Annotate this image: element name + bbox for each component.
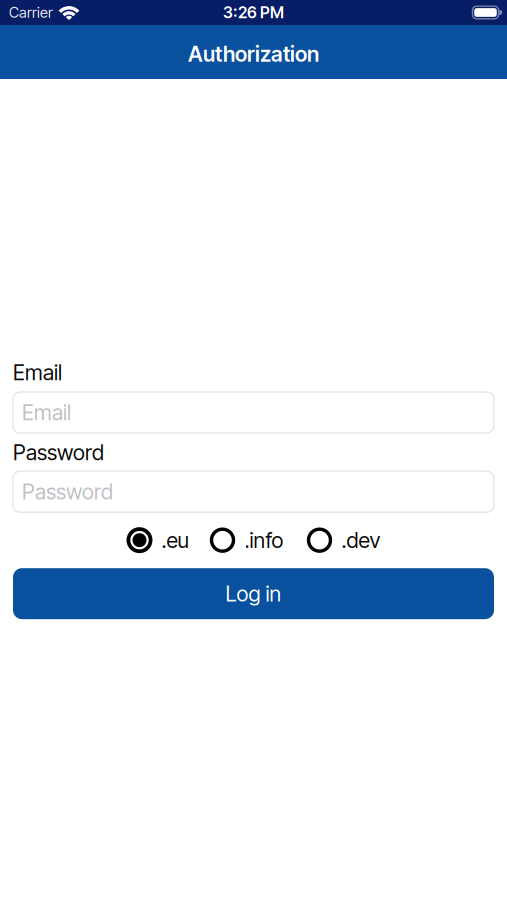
staticText: Authorization — [188, 41, 319, 67]
staticText: 3:26 PM — [223, 3, 284, 22]
button[interactable]: .info — [209, 527, 283, 553]
staticText: Carrier — [9, 4, 53, 21]
staticText: Email — [22, 400, 71, 425]
staticText: .info — [244, 528, 283, 553]
button[interactable]: .dev — [306, 527, 380, 553]
staticText: Password — [13, 440, 104, 465]
staticText: .dev — [341, 528, 380, 553]
button[interactable]: Password — [13, 471, 494, 512]
staticText: Email — [13, 360, 62, 385]
button[interactable]: .eu — [126, 527, 188, 553]
staticText: Password — [22, 479, 113, 504]
staticText: Log in — [225, 581, 281, 606]
button[interactable]: Log in — [13, 568, 494, 619]
button[interactable]: Email — [13, 392, 494, 433]
staticText: .eu — [161, 528, 188, 553]
